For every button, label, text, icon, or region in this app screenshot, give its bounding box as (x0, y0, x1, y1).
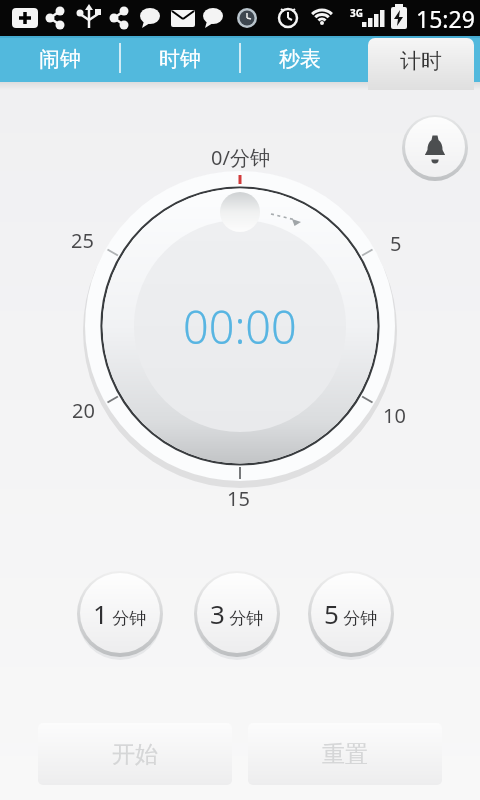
staticText: 15:29 (416, 3, 475, 34)
staticText: 重置 (322, 740, 368, 769)
button[interactable]: 5 分钟 (308, 571, 394, 657)
button[interactable]: 3 分钟 (194, 571, 280, 657)
staticText: 00:00 (183, 296, 297, 357)
staticText: 20 (72, 397, 95, 424)
button[interactable]: 秒表 (240, 36, 360, 82)
button[interactable]: 1 分钟 (77, 571, 163, 657)
staticText: 5 分钟 (324, 596, 378, 631)
staticText: 3 分钟 (210, 596, 264, 631)
button[interactable] (402, 115, 468, 181)
staticText: 闹钟 (39, 46, 81, 72)
staticText: 25 (71, 227, 94, 254)
staticText: 计时 (400, 48, 442, 74)
staticText: 15 (227, 485, 250, 512)
staticText: 秒表 (279, 46, 321, 72)
staticText: 10 (383, 402, 406, 429)
staticText: 5 (390, 230, 402, 257)
button[interactable]: 时钟 (120, 36, 240, 82)
button[interactable]: 计时 (368, 38, 474, 90)
button[interactable]: 闹钟 (0, 36, 120, 82)
button[interactable]: 开始 (38, 723, 232, 785)
button[interactable]: 重置 (248, 723, 442, 785)
staticText: 时钟 (159, 46, 201, 72)
staticText: 开始 (112, 740, 158, 769)
staticText: 0/分钟 (211, 144, 270, 171)
staticText: 1 分钟 (93, 596, 147, 631)
staticText: 3G (350, 6, 363, 20)
